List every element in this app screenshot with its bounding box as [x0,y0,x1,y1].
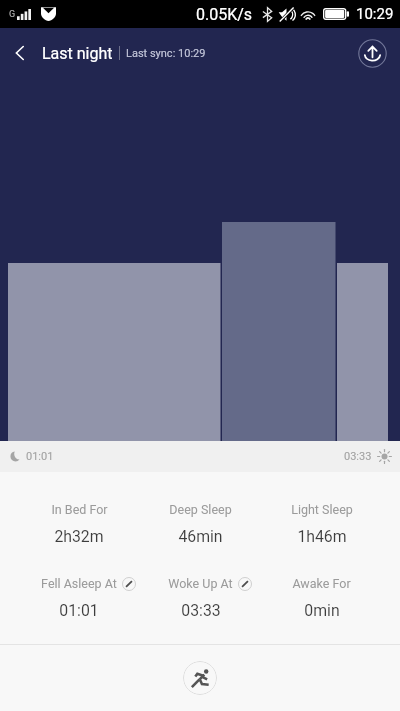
staticText: G [9,9,16,20]
button[interactable]: Deep Sleep [140,502,261,546]
staticText: 10:29 [356,5,394,23]
staticText: Deep Sleep [169,502,232,517]
staticText: Last night [42,44,113,63]
staticText: Woke Up At [168,576,233,591]
button[interactable]: Awake For [261,576,382,620]
button[interactable]: Activity [183,661,217,695]
button[interactable]: In Bed For [18,502,140,546]
staticText: 03:33 [181,601,221,620]
staticText: 2h32m [54,527,104,546]
button[interactable]: Back [0,28,40,78]
staticText: 1h46m [297,527,347,546]
staticText: Last sync: 10:29 [126,47,206,60]
staticText: Light Sleep [291,502,353,517]
button[interactable]: Share [344,28,400,78]
staticText: 01:01 [59,601,99,620]
staticText: In Bed For [51,502,108,517]
staticText: 0min [304,601,340,620]
staticText: 0.05K/s [196,5,253,24]
button[interactable]: Light Sleep [261,502,382,546]
staticText: 03:33 [344,450,372,463]
staticText: 46min [178,527,223,546]
button[interactable]: Woke Up At [140,576,261,620]
button[interactable]: Fell Asleep At [18,576,140,620]
staticText: Fell Asleep At [41,576,117,591]
staticText: 01:01 [26,450,54,463]
staticText: Awake For [292,576,351,591]
